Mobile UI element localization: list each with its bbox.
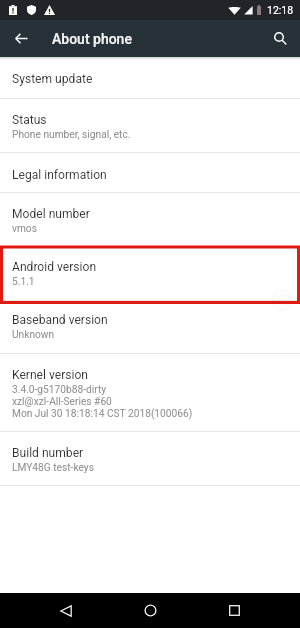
staticText: Baseband version bbox=[12, 313, 108, 327]
button[interactable]: System update bbox=[0, 57, 300, 98]
button[interactable]: Legal information bbox=[0, 153, 300, 192]
staticText: 3.4.0-g5170b88-dirty bbox=[12, 384, 107, 396]
button[interactable]: Home bbox=[108, 593, 192, 628]
staticText: Phone number, signal, etc. bbox=[12, 129, 131, 141]
staticText: xzl@xzl-All-Series #60 bbox=[12, 396, 112, 408]
staticText: LMY48G test-keys bbox=[12, 462, 94, 474]
button[interactable]: Build number bbox=[0, 432, 300, 485]
staticText: Model number bbox=[12, 207, 90, 221]
staticText: System update bbox=[12, 72, 93, 86]
staticText: Legal information bbox=[12, 168, 107, 182]
staticText: Mon Jul 30 18:18:14 CST 2018(100066) bbox=[12, 408, 193, 420]
button[interactable]: Baseband version bbox=[0, 301, 300, 353]
staticText: Kernel version bbox=[12, 368, 89, 382]
staticText: Status bbox=[12, 113, 47, 127]
button[interactable]: Model number bbox=[0, 193, 300, 246]
button[interactable]: Navigate up bbox=[8, 20, 34, 57]
staticText: vmos bbox=[12, 223, 37, 235]
staticText: Build number bbox=[12, 446, 84, 460]
button[interactable]: Recent apps bbox=[192, 593, 276, 628]
button[interactable]: Status bbox=[0, 99, 300, 152]
staticText: About phone bbox=[52, 31, 132, 47]
staticText: Unknown bbox=[12, 329, 55, 341]
staticText: Android version bbox=[12, 260, 97, 274]
staticText: 12:18 bbox=[267, 4, 294, 16]
staticText: 5.1.1 bbox=[12, 276, 35, 288]
button[interactable]: Search bbox=[267, 20, 293, 57]
button[interactable]: Android version bbox=[0, 247, 300, 300]
button[interactable]: Kernel version bbox=[0, 354, 300, 431]
button[interactable]: Back bbox=[24, 593, 108, 628]
